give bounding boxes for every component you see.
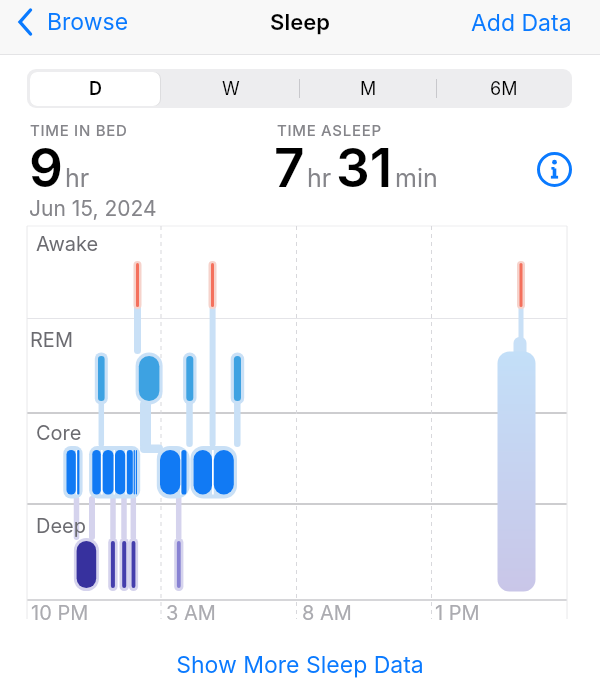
staticText: Jun 15, 2024 bbox=[29, 196, 157, 221]
button[interactable]: Show More Sleep Data bbox=[0, 651, 600, 679]
staticText: hr bbox=[65, 163, 90, 193]
staticText: 9 bbox=[29, 136, 63, 200]
staticText: REM bbox=[30, 328, 73, 352]
button[interactable] bbox=[30, 72, 160, 106]
staticText: M bbox=[360, 78, 377, 100]
staticText: Sleep bbox=[0, 9, 600, 36]
staticText: hr bbox=[307, 163, 332, 193]
button[interactable]: Browse bbox=[16, 6, 129, 38]
staticText: W bbox=[222, 78, 240, 100]
staticText: D bbox=[89, 78, 102, 100]
staticText: min bbox=[395, 163, 438, 193]
button[interactable]: D bbox=[27, 69, 163, 108]
button[interactable] bbox=[536, 151, 573, 188]
staticText: Core bbox=[36, 421, 82, 445]
staticText: TIME IN BED bbox=[30, 121, 128, 139]
staticText: 3 AM bbox=[166, 601, 216, 625]
staticText: 10 PM bbox=[31, 601, 89, 625]
button[interactable]: M bbox=[300, 69, 436, 108]
staticText: 8 AM bbox=[302, 601, 352, 625]
staticText: 6M bbox=[490, 78, 518, 100]
staticText: 31 bbox=[336, 136, 393, 200]
staticText: Awake bbox=[36, 232, 99, 256]
staticText: 7 bbox=[274, 136, 305, 200]
button[interactable]: Add Data bbox=[471, 9, 572, 37]
staticText: 1 PM bbox=[435, 601, 480, 625]
button[interactable]: 6M bbox=[436, 69, 572, 108]
staticText: Browse bbox=[47, 8, 129, 36]
staticText: TIME ASLEEP bbox=[277, 121, 382, 139]
button[interactable]: W bbox=[163, 69, 299, 108]
staticText: Deep bbox=[36, 514, 86, 538]
